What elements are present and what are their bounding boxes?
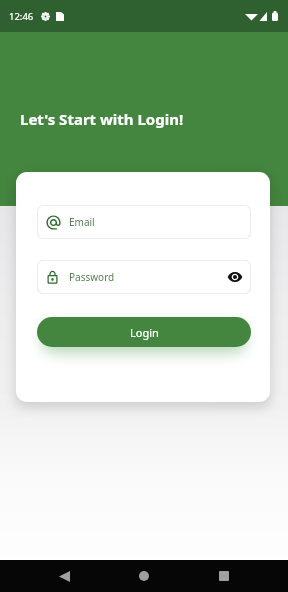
button[interactable]: Recent apps: [204, 560, 244, 592]
staticText: Password: [69, 270, 115, 284]
staticText: Let's Start with Login!: [20, 109, 184, 129]
button[interactable]: Show password: [220, 262, 250, 292]
staticText: Email: [69, 215, 95, 229]
button[interactable]: Back: [44, 560, 84, 592]
button[interactable]: Home: [124, 560, 164, 592]
button[interactable]: Email: [37, 205, 251, 239]
button[interactable]: Login: [37, 317, 251, 347]
button[interactable]: Password: [37, 260, 251, 294]
staticText: Login: [130, 325, 159, 340]
staticText: 12:46: [9, 10, 34, 23]
